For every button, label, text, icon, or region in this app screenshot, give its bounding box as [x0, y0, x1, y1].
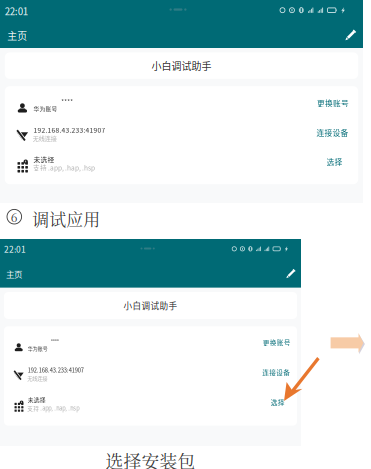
staticText: 主页 [6, 268, 22, 280]
staticText: 主页 [7, 28, 27, 42]
button[interactable]: 未选择 [5, 150, 358, 179]
staticText: 22:01 [5, 4, 28, 18]
staticText: 小白调试助手 [123, 299, 177, 312]
staticText: 支持 .app, .hap, .hsp [33, 163, 95, 172]
staticText: 22:01 [4, 243, 26, 255]
staticText: 支持 .app, .hap, .hsp [27, 404, 79, 412]
staticText: 192.168.43.233:41907 [33, 125, 105, 135]
staticText: **** [61, 97, 73, 106]
staticText: 连接设备 [316, 127, 348, 138]
staticText: 192.168.43.233:41907 [28, 366, 84, 374]
staticText: 未选择 [33, 154, 54, 164]
staticText: 选择 [327, 156, 343, 167]
staticText: 6 [11, 208, 18, 225]
staticText: 选择 [271, 397, 285, 407]
staticText: 无线连接 [27, 374, 47, 382]
button[interactable]: 华为账号 [5, 91, 358, 120]
button[interactable]: 未选择 [4, 391, 297, 421]
staticText: 华为账号 [33, 104, 57, 113]
staticText: **** [51, 337, 59, 345]
staticText: 小白调试助手 [151, 58, 211, 73]
staticText: 更换账号 [263, 338, 291, 347]
staticText: 调试应用 [32, 206, 100, 231]
staticText: 连接设备 [262, 367, 290, 377]
staticText: 更换账号 [317, 97, 349, 109]
button[interactable]: 编辑 [282, 264, 300, 282]
staticText: 未选择 [28, 395, 46, 404]
button[interactable]: 编辑 [340, 24, 361, 45]
staticText: 无线连接 [33, 134, 57, 143]
button[interactable]: 192.168.43.233:41907 [4, 361, 297, 391]
button[interactable]: 华为账号 [4, 331, 297, 361]
button[interactable]: 192.168.43.233:41907 [5, 120, 358, 150]
staticText: 华为账号 [28, 345, 48, 352]
staticText: 选择安装包 [105, 448, 195, 469]
